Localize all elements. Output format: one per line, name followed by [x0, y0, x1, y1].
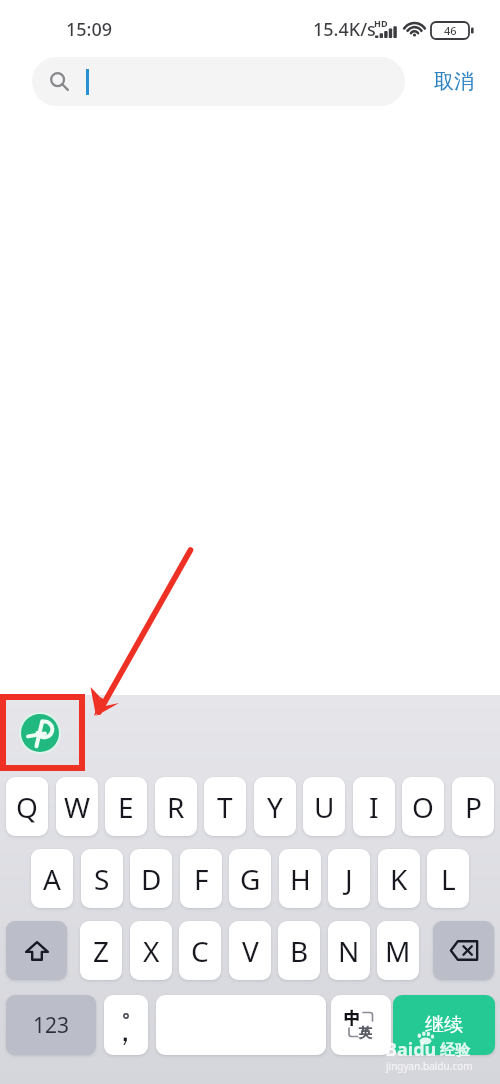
staticText: P: [465, 788, 482, 826]
button[interactable]: I: [353, 777, 395, 836]
staticText: jingyan.baidu.com: [386, 1059, 473, 1073]
staticText: O: [412, 788, 434, 826]
button[interactable]: B: [278, 921, 320, 980]
staticText: 15:09: [66, 17, 113, 42]
staticText: 继续: [425, 1013, 463, 1037]
staticText: 英: [359, 1024, 372, 1040]
button[interactable]: Chinese English toggle: [331, 995, 391, 1055]
staticText: D: [141, 860, 162, 898]
staticText: N: [338, 932, 360, 970]
button[interactable]: F: [180, 849, 222, 908]
staticText: Q: [16, 788, 38, 826]
staticText: HD: [374, 17, 388, 29]
staticText: 15.4K/s: [313, 17, 376, 42]
button[interactable]: 继续: [393, 995, 495, 1055]
button[interactable]: Input method menu: [19, 712, 61, 754]
button[interactable]: 123: [6, 995, 96, 1055]
staticText: 经验: [440, 1041, 470, 1060]
staticText: W: [64, 788, 91, 826]
button[interactable]: V: [229, 921, 271, 980]
staticText: 取消: [434, 69, 474, 94]
button[interactable]: Backspace: [433, 921, 494, 980]
button[interactable]: R: [155, 777, 197, 836]
button[interactable]: S: [81, 849, 123, 908]
staticText: X: [143, 932, 160, 970]
staticText: 123: [33, 1011, 70, 1040]
button[interactable]: J: [328, 849, 370, 908]
staticText: B: [290, 932, 309, 970]
staticText: M: [385, 932, 411, 970]
button[interactable]: H: [279, 849, 321, 908]
staticText: T: [217, 788, 233, 826]
button[interactable]: Y: [254, 777, 296, 836]
button[interactable]: Z: [80, 921, 122, 980]
staticText: 中: [344, 1009, 360, 1029]
staticText: K: [390, 860, 408, 898]
staticText: ，: [110, 1012, 140, 1050]
button[interactable]: D: [130, 849, 172, 908]
staticText: 46: [444, 23, 457, 38]
button[interactable]: P: [452, 777, 494, 836]
button[interactable]: M: [377, 921, 419, 980]
button[interactable]: T: [204, 777, 246, 836]
staticText: Baidu: [385, 1037, 437, 1062]
staticText: G: [240, 860, 261, 898]
button[interactable]: L: [427, 849, 469, 908]
button[interactable]: O: [402, 777, 444, 836]
staticText: U: [314, 788, 335, 826]
staticText: A: [43, 860, 61, 898]
button[interactable]: 取消: [424, 57, 484, 106]
button[interactable]: U: [303, 777, 345, 836]
button[interactable]: X: [130, 921, 172, 980]
staticText: Z: [93, 932, 110, 970]
button[interactable]: Comma: [104, 995, 148, 1055]
staticText: S: [94, 860, 110, 898]
button[interactable]: Space: [156, 995, 326, 1055]
staticText: R: [167, 788, 185, 826]
button[interactable]: K: [378, 849, 420, 908]
staticText: F: [194, 860, 209, 898]
staticText: H: [290, 860, 311, 898]
staticText: L: [441, 860, 456, 898]
button[interactable]: C: [179, 921, 221, 980]
button[interactable]: Search field: [32, 57, 405, 106]
button[interactable]: A: [31, 849, 73, 908]
button[interactable]: G: [229, 849, 271, 908]
staticText: Y: [267, 788, 283, 826]
button[interactable]: E: [105, 777, 147, 836]
button[interactable]: W: [56, 777, 98, 836]
staticText: V: [242, 932, 259, 970]
button[interactable]: N: [328, 921, 370, 980]
staticText: J: [345, 860, 353, 898]
button[interactable]: Q: [6, 777, 48, 836]
button[interactable]: Shift: [6, 921, 67, 980]
staticText: E: [118, 788, 134, 826]
staticText: I: [369, 788, 379, 826]
staticText: C: [191, 932, 209, 970]
